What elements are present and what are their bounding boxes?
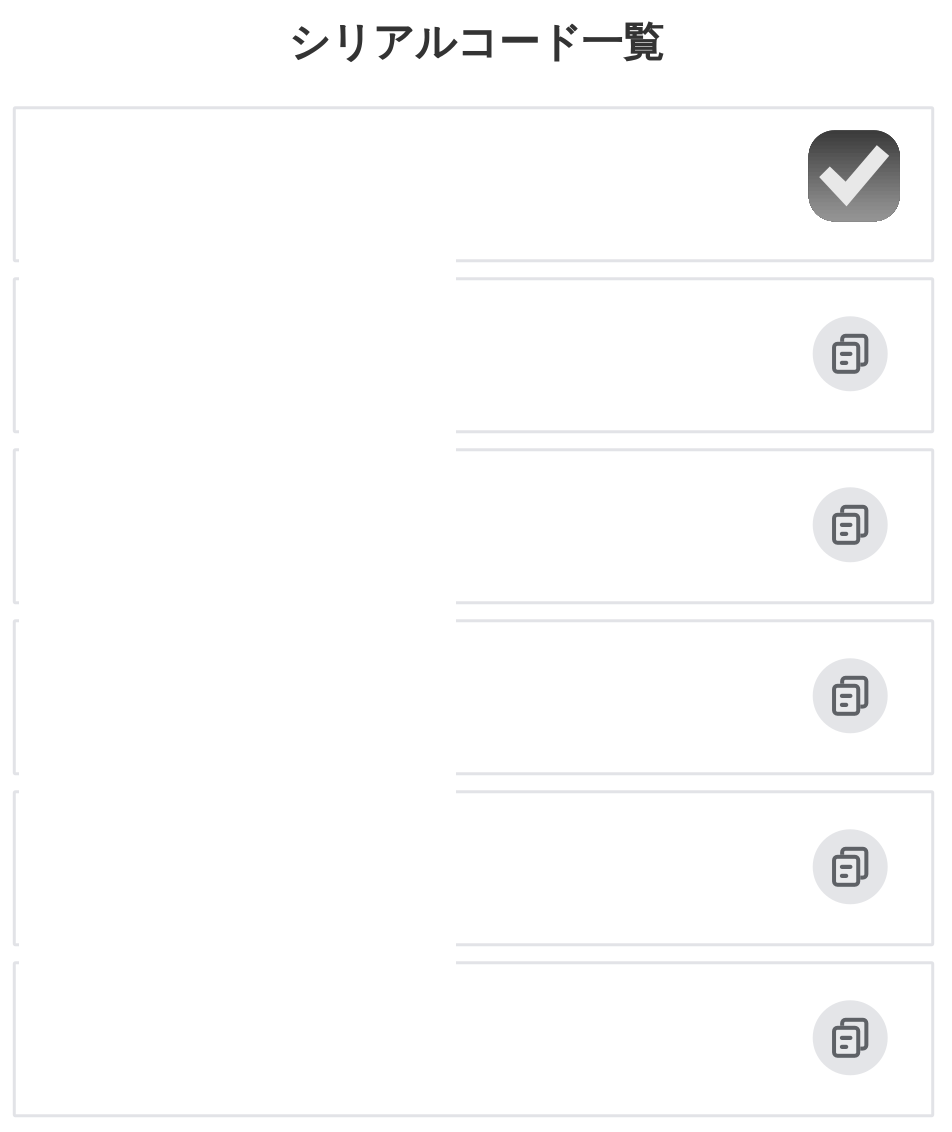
button[interactable]: コードをコピー	[813, 487, 888, 562]
staticText: シリアルコード一覧	[288, 17, 663, 68]
button[interactable]: コードをコピー	[813, 316, 888, 391]
button[interactable]: コードをコピー	[813, 1000, 888, 1075]
button[interactable]: コードをコピー	[813, 658, 888, 733]
button[interactable]: 使用済み	[809, 130, 900, 221]
button[interactable]: コードをコピー	[813, 829, 888, 904]
